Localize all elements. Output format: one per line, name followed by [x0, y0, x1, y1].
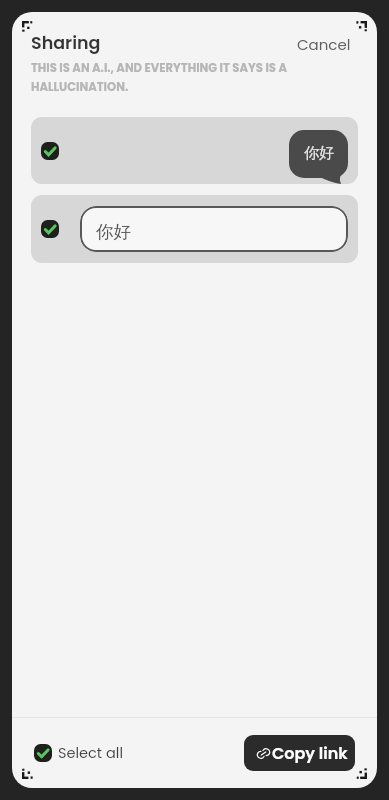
staticText: THIS IS AN A.I., AND EVERYTHING IT SAYS …: [31, 60, 289, 95]
staticText: Cancel: [297, 34, 351, 55]
staticText: Sharing: [31, 31, 101, 56]
staticText: 你好: [96, 221, 131, 243]
staticText: 你好: [304, 144, 334, 163]
button[interactable]: Select all: [34, 743, 123, 763]
button[interactable]: Copy link: [244, 735, 355, 771]
staticText: Select all: [58, 743, 123, 763]
staticText: Copy link: [272, 742, 348, 764]
button[interactable]: 你好: [31, 117, 358, 184]
button[interactable]: Cancel: [295, 32, 353, 57]
button[interactable]: 你好: [31, 195, 358, 263]
other: Copy link: [257, 747, 270, 760]
